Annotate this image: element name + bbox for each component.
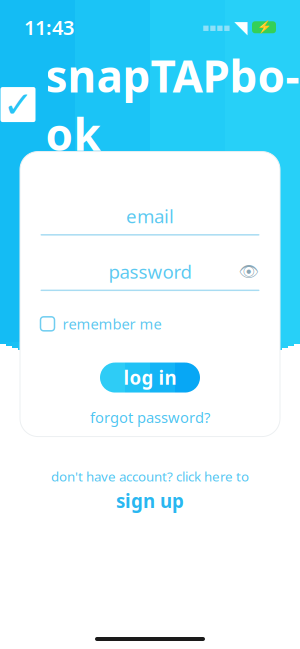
button[interactable]: forgot password? <box>82 405 218 430</box>
staticText: ✓ <box>3 84 33 125</box>
staticText: log in <box>123 365 176 390</box>
staticText: don't have account? click here to <box>51 468 249 485</box>
staticText: forgot password? <box>90 408 210 427</box>
staticText: password <box>108 259 191 284</box>
button[interactable]: Show password <box>237 262 259 282</box>
staticText: ⚡ <box>256 20 271 34</box>
staticText: ▪▪▪▪ <box>202 21 230 33</box>
staticText: 11:43 <box>24 14 74 41</box>
staticText: sign up <box>116 488 184 513</box>
button[interactable]: remember me <box>40 314 161 334</box>
staticText: ◥ <box>234 17 247 37</box>
staticText: snapTAPbook <box>45 46 299 163</box>
staticText: 👁 <box>238 262 258 281</box>
staticText: remember me <box>62 314 161 334</box>
button[interactable]: don't have account? click here to <box>41 466 259 515</box>
staticText: email <box>126 204 174 228</box>
button[interactable]: log in <box>100 363 200 393</box>
